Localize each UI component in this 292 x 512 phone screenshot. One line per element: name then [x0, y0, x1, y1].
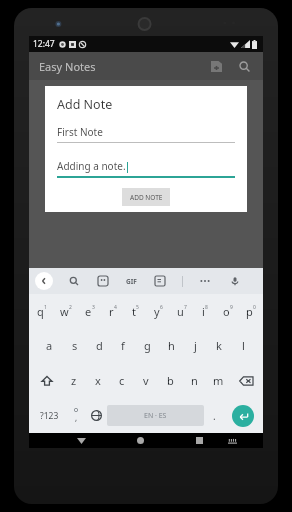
- button[interactable]: Change language: [86, 398, 107, 433]
- staticText: n: [191, 373, 198, 388]
- button[interactable]: GIF: [124, 275, 139, 288]
- staticText: .: [213, 409, 216, 423]
- button[interactable]: k: [207, 328, 231, 363]
- staticText: u: [177, 304, 184, 319]
- button[interactable]: h: [159, 328, 183, 363]
- staticText: q: [37, 304, 44, 319]
- button[interactable]: Home: [130, 433, 150, 448]
- staticText: f: [121, 338, 125, 353]
- button[interactable]: z: [62, 363, 86, 398]
- button[interactable]: m: [206, 363, 230, 398]
- button[interactable]: ?123: [32, 398, 66, 433]
- button[interactable]: l: [231, 328, 255, 363]
- staticText: k: [216, 338, 222, 353]
- button[interactable]: Backspace: [230, 363, 261, 398]
- button[interactable]: v: [134, 363, 158, 398]
- staticText: ,: [75, 412, 78, 423]
- staticText: i: [202, 304, 205, 319]
- button[interactable]: Recent apps: [189, 433, 209, 448]
- staticText: s: [72, 338, 78, 353]
- button[interactable]: Adding a note.: [57, 159, 235, 178]
- staticText: Easy Notes: [39, 59, 96, 74]
- staticText: l: [242, 338, 245, 353]
- staticText: t: [132, 304, 136, 319]
- button[interactable]: x: [86, 363, 110, 398]
- button[interactable]: Search: [233, 55, 255, 77]
- staticText: 0: [253, 304, 256, 311]
- staticText: 8: [205, 304, 208, 311]
- staticText: Add Note: [57, 96, 113, 113]
- button[interactable]: Period: [204, 398, 225, 433]
- button[interactable]: ADD NOTE: [122, 188, 170, 206]
- staticText: ?123: [40, 410, 59, 422]
- button[interactable]: Add note: [205, 55, 227, 77]
- staticText: ADD NOTE: [130, 193, 163, 202]
- button[interactable]: Enter: [232, 405, 254, 427]
- button[interactable]: w: [54, 294, 78, 328]
- button[interactable]: Hide keyboard: [222, 433, 242, 448]
- button[interactable]: Voice input: [227, 273, 243, 289]
- staticText: e: [85, 304, 92, 319]
- staticText: First Note: [57, 125, 103, 139]
- staticText: 5: [136, 304, 139, 311]
- button[interactable]: First Note: [57, 125, 235, 143]
- staticText: c: [119, 373, 125, 388]
- staticText: b: [167, 373, 174, 388]
- button[interactable]: d: [87, 328, 111, 363]
- staticText: d: [96, 338, 103, 353]
- button[interactable]: Sticker: [95, 273, 111, 289]
- staticText: p: [246, 304, 253, 319]
- staticText: a: [46, 338, 53, 353]
- staticText: 3: [92, 304, 95, 311]
- button[interactable]: u: [170, 294, 193, 328]
- button[interactable]: o: [216, 294, 239, 328]
- staticText: j: [194, 338, 197, 353]
- button[interactable]: j: [183, 328, 207, 363]
- button[interactable]: b: [158, 363, 182, 398]
- button[interactable]: g: [135, 328, 159, 363]
- staticText: 4: [114, 304, 117, 311]
- button[interactable]: More options: [197, 273, 213, 289]
- button[interactable]: e: [78, 294, 101, 328]
- staticText: Adding a note.: [57, 159, 126, 173]
- button[interactable]: Search: [66, 273, 82, 289]
- staticText: w: [60, 304, 69, 319]
- staticText: 12:47: [33, 38, 55, 50]
- button[interactable]: Shift: [31, 363, 62, 398]
- button[interactable]: r: [101, 294, 124, 328]
- button[interactable]: c: [110, 363, 134, 398]
- button[interactable]: Back: [71, 433, 91, 448]
- button[interactable]: y: [147, 294, 170, 328]
- staticText: 2: [69, 304, 72, 311]
- staticText: y: [154, 304, 160, 319]
- staticText: GIF: [126, 277, 137, 286]
- button[interactable]: n: [182, 363, 206, 398]
- staticText: o: [223, 304, 230, 319]
- button[interactable]: p: [239, 294, 262, 328]
- button[interactable]: i: [193, 294, 216, 328]
- button[interactable]: a: [37, 328, 62, 363]
- staticText: m: [213, 373, 224, 388]
- button[interactable]: f: [111, 328, 135, 363]
- button[interactable]: Translate: [152, 273, 168, 289]
- staticText: 7: [184, 304, 187, 311]
- button[interactable]: t: [124, 294, 147, 328]
- staticText: x: [95, 373, 101, 388]
- staticText: r: [109, 304, 114, 319]
- button[interactable]: s: [62, 328, 87, 363]
- staticText: EN · ES: [144, 411, 167, 421]
- staticText: z: [71, 373, 77, 388]
- staticText: h: [168, 338, 175, 353]
- button[interactable]: Comma: [66, 398, 86, 433]
- staticText: 1: [44, 304, 47, 311]
- button[interactable]: Back: [35, 272, 53, 290]
- button[interactable]: q: [30, 294, 54, 328]
- staticText: 6: [160, 304, 163, 311]
- staticText: v: [143, 373, 149, 388]
- staticText: g: [144, 338, 151, 353]
- staticText: 9: [230, 304, 233, 311]
- button[interactable]: EN · ES: [107, 405, 204, 426]
